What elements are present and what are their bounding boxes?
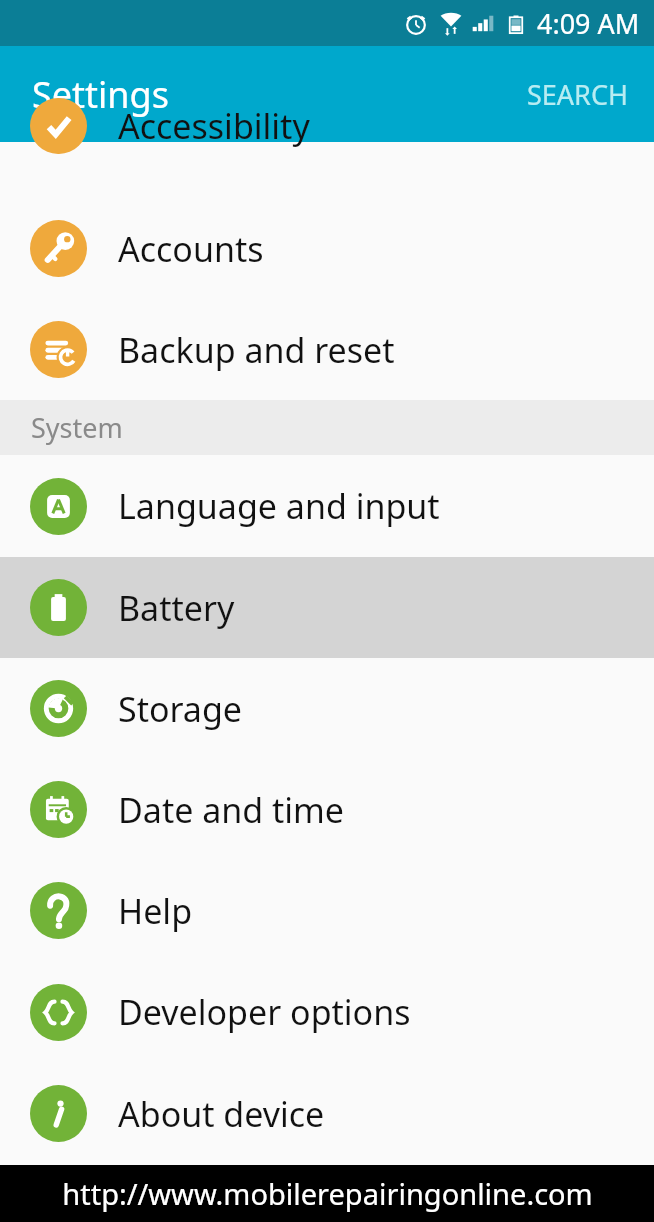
button[interactable]: Date and time bbox=[0, 759, 654, 860]
button[interactable]: Help bbox=[0, 860, 654, 961]
staticText: Developer options bbox=[118, 989, 411, 1035]
button[interactable]: Accessibility bbox=[0, 142, 654, 198]
button[interactable]: Developer options bbox=[0, 961, 654, 1063]
staticText: http://www.mobilerepairingonline.com bbox=[62, 1174, 593, 1213]
staticText: SEARCH bbox=[527, 76, 628, 113]
button[interactable]: SEARCH bbox=[501, 56, 654, 133]
staticText: Backup and reset bbox=[118, 327, 395, 373]
staticText: Date and time bbox=[118, 787, 345, 833]
button[interactable]: About device bbox=[0, 1063, 654, 1164]
staticText: System bbox=[31, 409, 123, 446]
button[interactable]: Backup and reset bbox=[0, 299, 654, 400]
button[interactable]: Battery bbox=[0, 557, 654, 658]
staticText: Language and input bbox=[118, 483, 440, 529]
staticText: Accounts bbox=[118, 226, 264, 272]
button[interactable]: Accounts bbox=[0, 198, 654, 299]
staticText: Accessibility bbox=[118, 103, 310, 149]
staticText: 4:09 AM bbox=[537, 5, 640, 42]
button[interactable]: Language and input bbox=[0, 455, 654, 557]
staticText: Help bbox=[118, 888, 193, 934]
staticText: Settings bbox=[32, 70, 169, 119]
staticText: About device bbox=[118, 1091, 325, 1137]
staticText: Battery bbox=[118, 585, 235, 631]
button[interactable]: Storage bbox=[0, 658, 654, 759]
staticText: Storage bbox=[118, 686, 243, 732]
